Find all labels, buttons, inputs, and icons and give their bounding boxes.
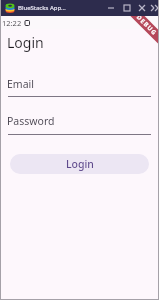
staticText: Login — [7, 33, 44, 52]
button[interactable]: Login — [10, 154, 149, 174]
staticText: BlueStacks App… — [18, 4, 66, 12]
staticText: Password — [7, 114, 55, 128]
staticText: 12:22 — [2, 18, 22, 28]
button[interactable] — [103, 0, 159, 16]
staticText: Email — [7, 77, 34, 91]
staticText: DEBUG — [135, 13, 159, 37]
staticText: Login — [66, 157, 94, 171]
